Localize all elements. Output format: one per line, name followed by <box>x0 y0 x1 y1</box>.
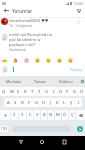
staticText: E <box>17 89 20 95</box>
staticText: Ü <box>80 89 84 95</box>
button[interactable]: Emoji <box>35 58 40 63</box>
button[interactable]: J <box>47 98 54 107</box>
button[interactable]: ?123 <box>0 126 8 132</box>
button[interactable]: Share <box>74 6 83 15</box>
button[interactable]: Kullanıcı <box>53 77 79 86</box>
button[interactable]: , <box>8 125 13 133</box>
button[interactable]: B <box>41 110 47 120</box>
button[interactable]: E <box>15 87 22 96</box>
button[interactable]: Paylaş <box>68 65 85 74</box>
staticText: U <box>45 89 49 95</box>
button[interactable]: P <box>64 87 71 96</box>
button[interactable]: Home <box>37 137 47 147</box>
staticText: Y <box>38 89 41 95</box>
button[interactable]: R <box>22 87 29 96</box>
button[interactable]: ismailismail0400 ♥♥ <box>9 18 73 28</box>
staticText: Q <box>2 89 6 95</box>
button[interactable]: I <box>50 87 57 96</box>
button[interactable]: Back <box>2 6 11 15</box>
staticText: R <box>24 89 27 95</box>
staticText: H <box>42 100 46 106</box>
button[interactable]: Shift <box>0 110 10 120</box>
button[interactable]: melih.özt Bunushsd.nn yok ka sdmlnn w pa… <box>9 32 53 52</box>
staticText: C <box>29 112 32 118</box>
button[interactable]: Y <box>36 87 43 96</box>
staticText: V <box>36 112 39 118</box>
staticText: Z <box>13 112 16 118</box>
button[interactable]: U <box>43 87 50 96</box>
staticText: I <box>53 89 55 95</box>
button[interactable]: Emoji <box>2 58 7 63</box>
staticText: N <box>49 112 53 118</box>
staticText: Merhaba <box>6 79 22 84</box>
staticText: Ö <box>63 112 67 118</box>
staticText: ?123 <box>1 127 8 131</box>
button[interactable]: Emoji <box>46 58 51 63</box>
button[interactable]: Like <box>76 20 81 25</box>
staticText: X <box>21 112 24 118</box>
staticText: T <box>31 89 34 95</box>
staticText: Yanıtlamak <box>9 48 26 52</box>
button[interactable]: O <box>57 87 64 96</box>
staticText: A <box>7 100 10 106</box>
button[interactable]: G <box>33 98 40 107</box>
button[interactable]: A <box>4 98 12 107</box>
button[interactable]: Ğ <box>71 87 78 96</box>
staticText: K <box>56 100 59 106</box>
button[interactable]: Q <box>0 87 8 96</box>
staticText: melih.özt Bunushsd.nn yok ka sdmlnn w pa… <box>9 32 53 47</box>
button[interactable]: V <box>34 110 40 120</box>
staticText: Tamam <box>34 79 47 84</box>
button[interactable]: Emoji <box>57 58 62 63</box>
button[interactable]: I <box>75 98 82 107</box>
button[interactable]: D <box>19 98 26 107</box>
button[interactable]: Ç <box>69 110 75 120</box>
button[interactable]: M <box>55 110 61 120</box>
staticText: Yorumlar <box>12 8 33 14</box>
button[interactable]: Ö <box>62 110 68 120</box>
staticText: Kullanıcı <box>59 79 74 84</box>
staticText: M <box>56 112 60 118</box>
staticText: P <box>66 89 69 95</box>
button[interactable]: Recent apps <box>59 137 69 147</box>
button[interactable]: C <box>27 110 33 120</box>
button[interactable]: S <box>12 98 19 107</box>
button[interactable]: Ü <box>78 87 85 96</box>
button[interactable]: X <box>19 110 26 120</box>
button[interactable]: . <box>70 125 75 133</box>
button[interactable]: Send <box>75 124 85 134</box>
staticText: B <box>43 112 46 118</box>
staticText: 1h 1 beğenme <box>9 24 33 28</box>
button[interactable]: T <box>29 87 36 96</box>
button[interactable]: K <box>54 98 61 107</box>
staticText: . <box>72 127 73 132</box>
staticText: , <box>10 127 11 132</box>
staticText: 12:04 <box>74 1 83 6</box>
staticText: I <box>78 100 80 106</box>
button[interactable]: Z <box>11 110 18 120</box>
button[interactable]: L <box>61 98 68 107</box>
staticText: Ğ <box>73 89 77 95</box>
button[interactable]: N <box>48 110 54 120</box>
button[interactable]: Merhaba <box>0 77 27 86</box>
staticText: F <box>28 100 31 106</box>
button[interactable]: Keyboard settings <box>79 77 85 86</box>
staticText: Ş <box>70 100 73 106</box>
button[interactable]: Back <box>16 137 26 147</box>
button[interactable]: Emoji <box>24 58 29 63</box>
staticText: J <box>50 100 52 106</box>
button[interactable]: H <box>40 98 47 107</box>
staticText: Ç <box>71 112 74 118</box>
staticText: W <box>10 89 14 95</box>
staticText: D <box>21 100 25 106</box>
button[interactable]: F <box>26 98 33 107</box>
button[interactable]: Tamam <box>27 77 53 86</box>
button[interactable]: Emoji <box>68 58 73 63</box>
button[interactable]: Ş <box>68 98 75 107</box>
staticText: O <box>59 89 63 95</box>
button[interactable]: W <box>8 87 15 96</box>
staticText: ismailismail0400 ♥♥ <box>9 18 49 23</box>
button[interactable]: Emoji <box>13 58 18 63</box>
button[interactable]: Backspace <box>76 110 85 120</box>
